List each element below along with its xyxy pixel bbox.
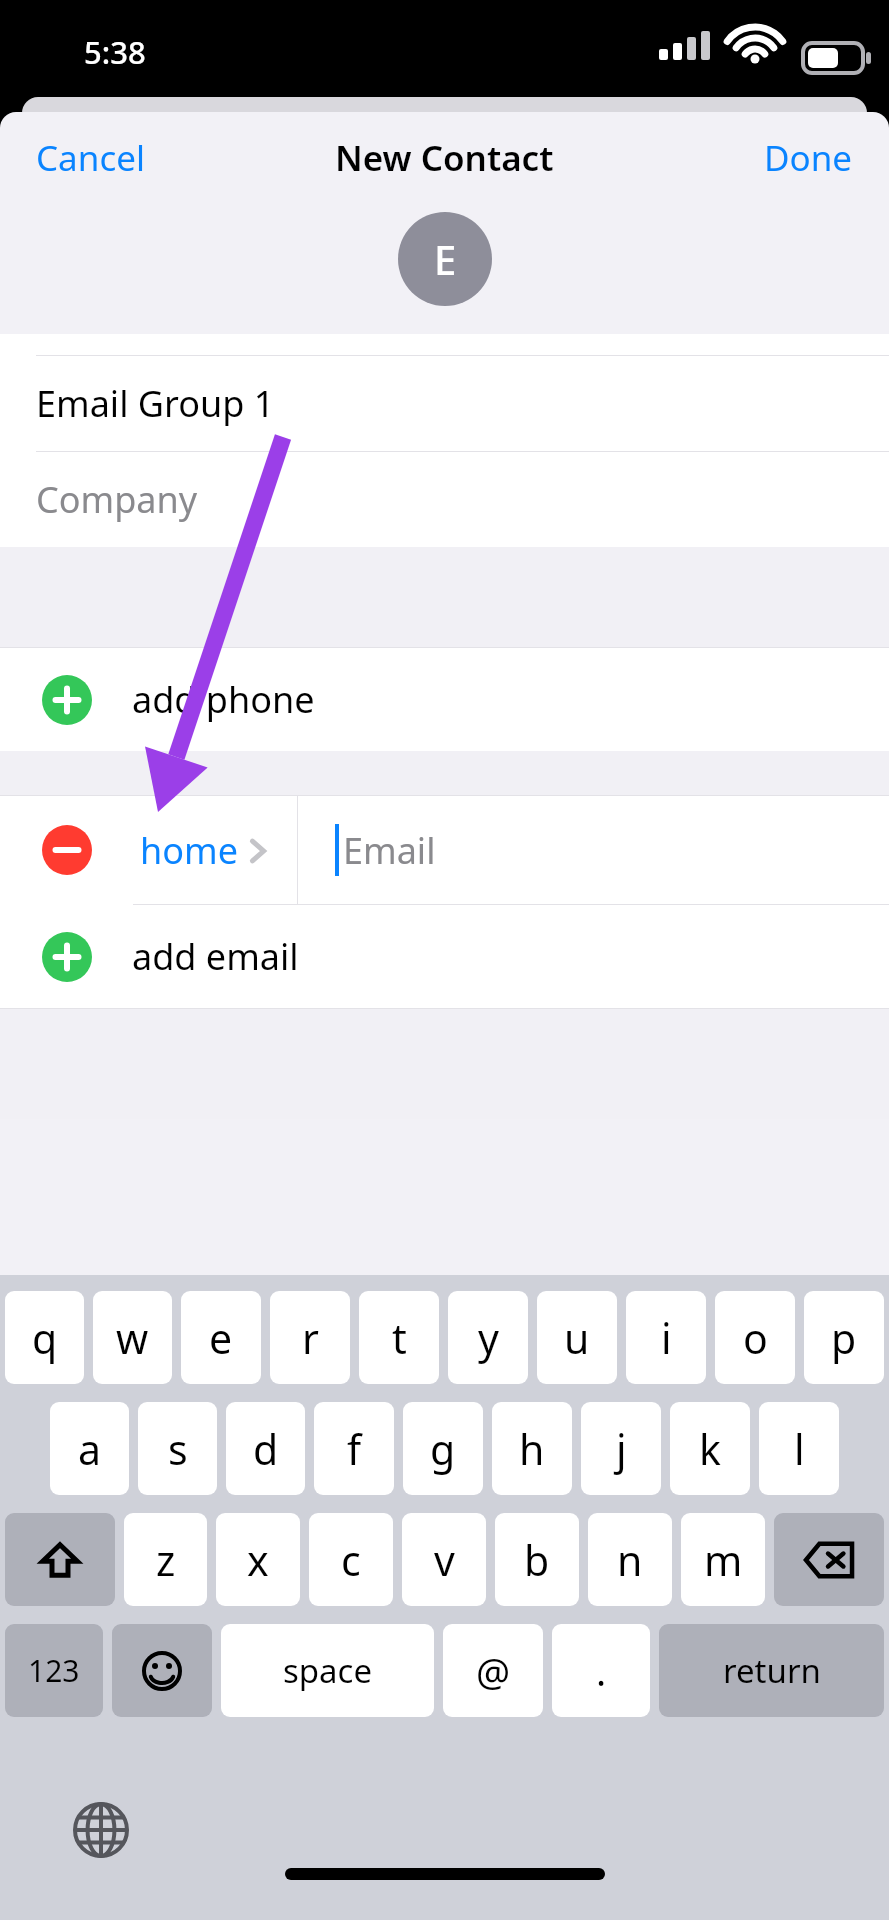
staticText: i [661,1310,672,1366]
button[interactable]: f [314,1402,394,1495]
button[interactable]: g [403,1402,483,1495]
staticText: n [617,1532,643,1588]
staticText: s [168,1421,188,1477]
button[interactable]: j [581,1402,661,1495]
button[interactable]: a [50,1402,129,1495]
staticText: j [616,1421,627,1477]
staticText: l [794,1421,805,1477]
button[interactable]: Backspace [774,1513,884,1606]
staticText: q [32,1310,58,1366]
staticText: h [519,1421,545,1477]
staticText: New Contact [335,134,554,182]
staticText: Company [36,475,198,524]
staticText: k [699,1421,721,1477]
staticText: home [140,826,238,875]
button[interactable]: v [402,1513,486,1606]
button[interactable]: Done [728,124,889,192]
button[interactable]: d [226,1402,305,1495]
staticText: Email [343,826,436,875]
staticText: 5:38 [84,31,146,73]
button[interactable]: x [216,1513,300,1606]
staticText: g [430,1421,456,1477]
button[interactable]: Remove email [42,825,92,875]
button[interactable]: w [93,1291,172,1384]
button[interactable]: . [552,1624,650,1717]
button[interactable]: e [181,1291,261,1384]
button[interactable]: return [659,1624,884,1717]
button[interactable]: Email [298,796,889,904]
staticText: y [478,1310,499,1366]
button[interactable]: Add photo [398,212,492,306]
button[interactable]: z [124,1513,207,1606]
staticText: u [564,1310,590,1366]
button[interactable]: q [5,1291,84,1384]
button[interactable]: u [537,1291,617,1384]
button[interactable]: h [492,1402,572,1495]
staticText: e [209,1310,233,1366]
button[interactable]: k [670,1402,750,1495]
button[interactable]: Email Group 1 [0,356,889,451]
staticText: Done [764,134,853,182]
staticText: z [156,1532,176,1588]
button[interactable]: Switch keyboard [73,1802,129,1858]
staticText: c [341,1532,361,1588]
button[interactable]: c [309,1513,393,1606]
staticText: d [253,1421,279,1477]
button[interactable]: p [804,1291,884,1384]
staticText: p [831,1310,857,1366]
staticText: v [434,1532,455,1588]
button[interactable]: y [448,1291,528,1384]
staticText: 123 [28,1650,80,1691]
button[interactable]: Cancel [0,124,181,192]
staticText: m [704,1532,743,1588]
button[interactable]: @ [443,1624,543,1717]
button[interactable]: b [495,1513,579,1606]
button[interactable]: Shift [5,1513,115,1606]
staticText: f [347,1421,362,1477]
button[interactable]: r [270,1291,350,1384]
staticText: add phone [132,675,315,724]
staticText: b [524,1532,550,1588]
staticText: o [743,1310,768,1366]
button[interactable]: 123 [5,1624,103,1717]
staticText: E [434,232,457,286]
button[interactable]: i [626,1291,706,1384]
button[interactable]: add phone [0,648,889,751]
staticText: add email [132,932,299,981]
button[interactable]: t [359,1291,439,1384]
button[interactable]: Emoji [112,1624,212,1717]
staticText: space [283,1648,373,1693]
staticText: w [116,1310,149,1366]
staticText: Cancel [36,134,145,182]
button[interactable]: Company [0,452,889,547]
staticText: a [78,1421,102,1477]
staticText: x [247,1532,269,1588]
staticText: . [596,1645,607,1697]
button[interactable]: o [715,1291,795,1384]
staticText: Email Group 1 [36,379,275,428]
button[interactable]: home [140,826,285,875]
staticText: r [302,1310,319,1366]
button[interactable]: space [221,1624,434,1717]
staticText: return [723,1648,821,1693]
button[interactable]: l [759,1402,839,1495]
button[interactable]: n [588,1513,672,1606]
button[interactable]: m [681,1513,765,1606]
staticText: @ [476,1645,511,1697]
button[interactable]: add email [0,905,889,1008]
staticText: t [392,1310,407,1366]
button[interactable]: s [138,1402,217,1495]
